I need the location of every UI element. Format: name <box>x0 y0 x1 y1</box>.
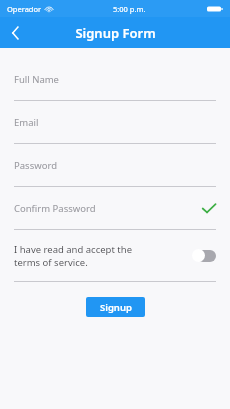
button[interactable]: Full Name <box>0 58 230 101</box>
button[interactable]: Back <box>0 17 30 48</box>
staticText: Email <box>14 116 39 129</box>
staticText: Signup <box>100 301 132 314</box>
staticText: Operador <box>7 4 42 14</box>
button[interactable]: Confirm Password <box>0 187 230 230</box>
button[interactable]: Password <box>0 144 230 187</box>
button[interactable]: Email <box>0 101 230 144</box>
staticText: Full Name <box>14 73 59 86</box>
staticText: I have read and accept the terms of serv… <box>14 243 132 269</box>
other: Accept terms of service <box>192 249 216 262</box>
button[interactable]: Signup <box>86 297 145 317</box>
staticText: Confirm Password <box>14 202 96 215</box>
button[interactable]: I have read and accept the terms of serv… <box>0 230 230 282</box>
staticText: Password <box>14 159 57 172</box>
staticText: Signup Form <box>75 24 156 42</box>
staticText: 5:00 p.m. <box>113 4 146 14</box>
